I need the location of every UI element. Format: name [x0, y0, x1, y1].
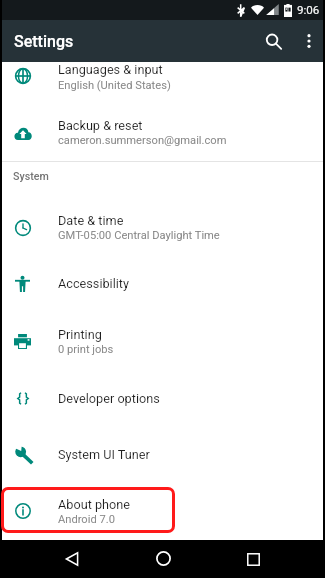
button[interactable]: Languages & input [2, 52, 323, 100]
button[interactable]: About phone [2, 487, 323, 535]
button[interactable]: Developer options [2, 374, 323, 422]
staticText: Developer options [58, 391, 160, 406]
staticText: About phone [58, 497, 131, 512]
staticText: Date & time [58, 213, 124, 228]
staticText: Languages & input [58, 62, 163, 77]
button[interactable]: System UI Tuner [2, 431, 323, 479]
staticText: Backup & reset [58, 118, 143, 133]
staticText: English (United States) [58, 79, 171, 92]
button[interactable]: Search [254, 22, 294, 62]
staticText: cameron.summerson@gmail.com [58, 134, 227, 147]
button[interactable]: Printing [2, 317, 323, 365]
button[interactable]: Backup & reset [2, 109, 323, 157]
staticText: GMT-05:00 Central Daylight Time [58, 229, 220, 242]
staticText: System [13, 170, 49, 183]
button[interactable]: Recent apps [235, 541, 271, 577]
staticText: Android 7.0 [58, 513, 115, 526]
staticText: System UI Tuner [58, 447, 150, 462]
button[interactable]: Home [145, 540, 181, 576]
staticText: Accessibility [58, 276, 130, 291]
button[interactable]: Date & time [2, 204, 323, 252]
staticText: Printing [58, 327, 102, 342]
staticText: 9:06 [297, 3, 320, 17]
staticText: Settings [14, 32, 74, 51]
button[interactable]: Accessibility [2, 260, 323, 308]
button[interactable]: More options [290, 22, 325, 60]
staticText: 0 print jobs [58, 343, 114, 356]
button[interactable]: Back [54, 541, 90, 577]
